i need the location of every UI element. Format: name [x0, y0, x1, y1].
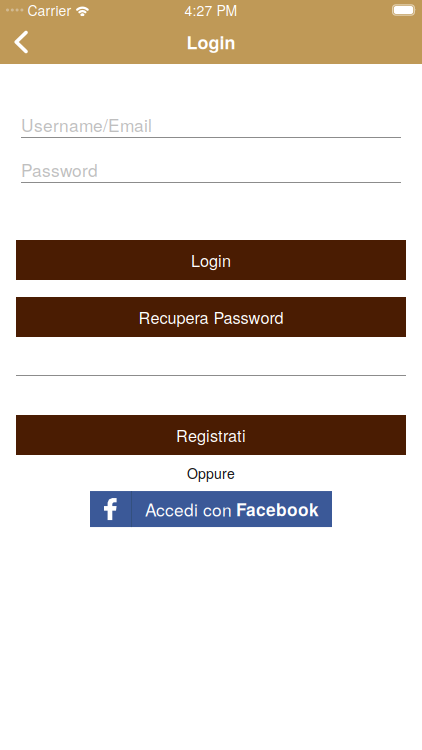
staticText: Carrier	[27, 0, 71, 20]
button[interactable]: Username/Email	[21, 114, 401, 138]
staticText: Login	[191, 248, 231, 272]
staticText: Password	[21, 157, 98, 182]
button[interactable]: Password	[21, 159, 401, 183]
button[interactable]: Accedi con	[90, 491, 332, 527]
staticText: Facebook	[236, 497, 319, 521]
staticText: 4:27 PM	[184, 0, 237, 20]
staticText: Accedi con	[145, 497, 232, 521]
staticText: Registrati	[176, 423, 246, 447]
button[interactable]: Login	[16, 240, 406, 280]
button[interactable]: Recupera Password	[16, 297, 406, 337]
staticText: Login	[186, 29, 235, 55]
button[interactable]: Registrati	[16, 415, 406, 455]
staticText: Username/Email	[21, 112, 152, 137]
staticText: Oppure	[187, 463, 235, 483]
staticText: Recupera Password	[138, 305, 283, 329]
button[interactable]: Back	[0, 20, 42, 64]
